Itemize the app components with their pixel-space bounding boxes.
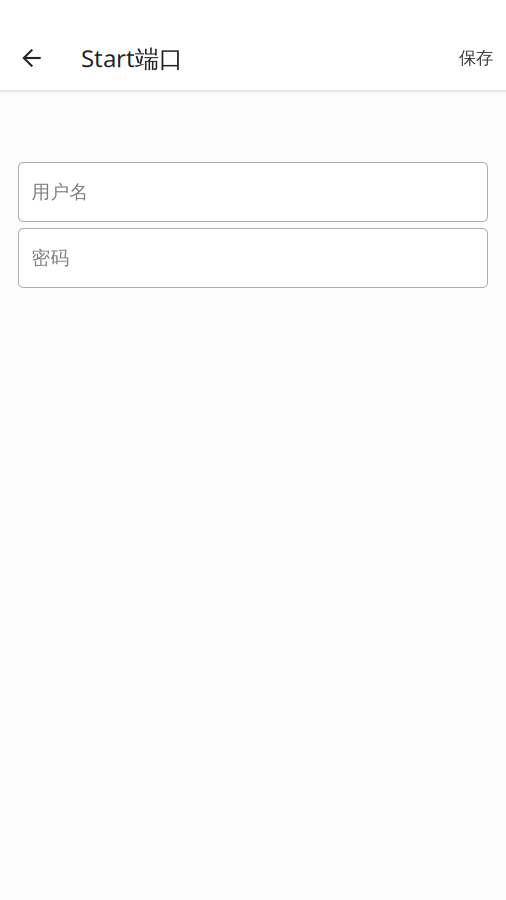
button[interactable]: 保存 <box>436 26 506 90</box>
button[interactable]: 用户名 <box>18 162 487 221</box>
staticText: 用户名 <box>31 180 88 203</box>
staticText: 保存 <box>459 47 493 69</box>
button[interactable]: 密码 <box>18 228 487 287</box>
button[interactable]: Back <box>0 26 64 90</box>
staticText: Start端口 <box>81 42 183 74</box>
staticText: 密码 <box>31 246 69 269</box>
